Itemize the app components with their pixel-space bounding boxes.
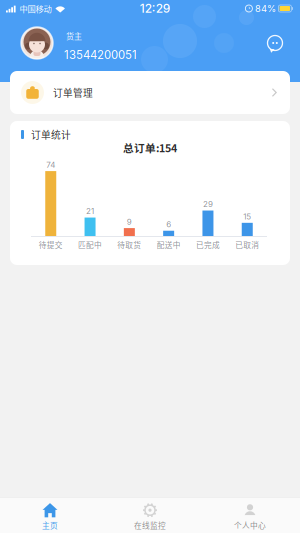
button[interactable]: 主页 <box>0 498 100 533</box>
staticText: 已完成 <box>196 239 220 250</box>
staticText: 6 <box>166 220 171 229</box>
staticText: 主页 <box>42 520 58 531</box>
staticText: 74 <box>46 160 55 170</box>
button[interactable]: 在线监控 <box>100 498 200 533</box>
staticText: 订单统计 <box>31 127 71 141</box>
button[interactable]: 消息 <box>264 32 286 54</box>
staticText: 9 <box>127 217 132 227</box>
staticText: 12:29 <box>140 1 171 16</box>
staticText: 待提交 <box>39 239 63 250</box>
button[interactable]: 个人中心 <box>200 498 300 533</box>
staticText: 货主 <box>66 30 82 42</box>
button[interactable]: 订单管理 <box>10 71 290 114</box>
staticText: 配送中 <box>157 239 181 250</box>
staticText: 匹配中 <box>78 239 102 250</box>
staticText: 15 <box>243 212 251 221</box>
staticText: 待取货 <box>117 239 141 250</box>
staticText: 订单管理 <box>53 85 93 99</box>
staticText: 84% <box>255 3 276 14</box>
staticText: 个人中心 <box>234 520 266 531</box>
staticText: 已取消 <box>235 239 259 250</box>
staticText: 在线监控 <box>134 520 166 531</box>
staticText: 13544200051 <box>64 48 137 62</box>
staticText: 总订单:154 <box>123 140 177 155</box>
staticText: 29 <box>203 199 213 209</box>
staticText: 21 <box>86 206 94 216</box>
staticText: 中国移动 <box>19 2 51 15</box>
